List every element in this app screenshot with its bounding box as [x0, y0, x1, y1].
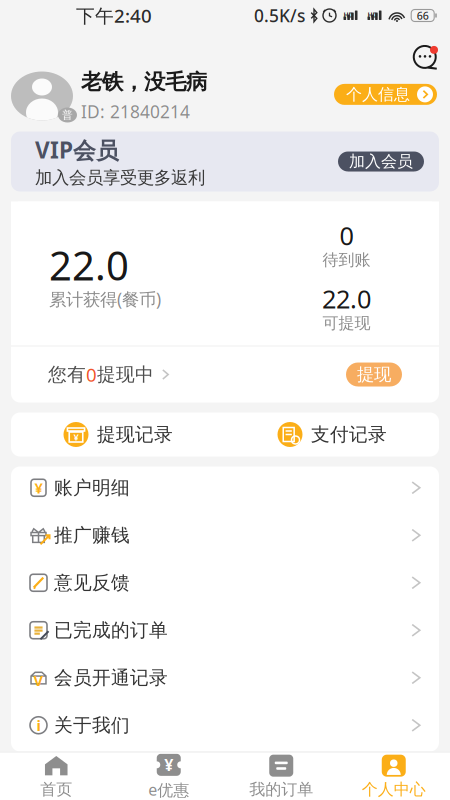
staticText: HD [343, 10, 353, 19]
staticText: 关于我们 [54, 714, 130, 737]
staticText: 待到账 [322, 250, 370, 270]
staticText: 0.5K/s [254, 4, 305, 27]
button[interactable]: i [11, 704, 439, 751]
staticText: 22.0 [322, 282, 371, 315]
staticText: 66 [417, 8, 429, 23]
button[interactable]: ¥ [11, 422, 225, 447]
button[interactable]: 您有 [48, 362, 169, 387]
button[interactable]: 已完成的订单 [11, 609, 439, 656]
staticText: 推广赚钱 [54, 524, 130, 547]
staticText: 个人中心 [362, 780, 426, 799]
staticText: 会员开通记录 [54, 666, 168, 689]
button[interactable]: 我的订单 [225, 752, 337, 800]
staticText: e优惠 [148, 779, 189, 800]
staticText: 下午2:40 [76, 3, 152, 28]
button[interactable]: 个人中心 [337, 752, 450, 800]
staticText: 支付记录 [311, 423, 387, 446]
staticText: VIP会员 [35, 135, 119, 165]
staticText: HD [367, 10, 377, 19]
staticText: ¥ [164, 754, 173, 775]
button[interactable]: V [11, 656, 439, 704]
button[interactable]: 推广赚钱 [11, 514, 439, 561]
staticText: V [33, 670, 43, 690]
staticText: 已完成的订单 [54, 619, 168, 642]
button[interactable]: Messages [413, 41, 450, 70]
staticText: 普 [62, 108, 73, 121]
staticText: 22.0 [49, 238, 129, 292]
button[interactable]: 提现 [346, 362, 402, 386]
staticText: i [36, 715, 40, 735]
staticText: 您有 [48, 363, 86, 386]
staticText: 首页 [40, 780, 72, 799]
staticText: 个人信息 [346, 85, 410, 104]
staticText: 提现 [357, 364, 391, 385]
staticText: 账户明细 [54, 476, 130, 499]
button[interactable]: 支付记录 [225, 422, 439, 447]
staticText: ID: 21840214 [81, 100, 190, 123]
staticText: ¥ [34, 478, 42, 497]
button[interactable]: 意见反馈 [11, 561, 439, 609]
staticText: 提现记录 [97, 423, 173, 446]
staticText: 意见反馈 [54, 571, 130, 594]
staticText: 老铁，没毛病 [81, 69, 207, 95]
button[interactable]: 个人信息 [334, 84, 450, 105]
button[interactable]: 首页 [0, 752, 112, 800]
button[interactable]: ¥ [11, 466, 439, 514]
staticText: 我的订单 [249, 780, 313, 799]
button[interactable]: ¥ [112, 752, 225, 800]
staticText: 加入会员 [349, 152, 413, 171]
staticText: 加入会员享受更多返利 [35, 167, 205, 188]
staticText: 累计获得(餐币) [49, 288, 161, 311]
staticText: 0 [86, 362, 97, 387]
staticText: 可提现 [322, 313, 370, 333]
button[interactable]: 加入会员 [338, 151, 424, 171]
staticText: 提现中 [97, 363, 154, 386]
staticText: ¥ [73, 431, 78, 443]
staticText: 0 [339, 218, 353, 252]
